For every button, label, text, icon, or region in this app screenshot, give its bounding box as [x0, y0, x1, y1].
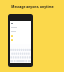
- button[interactable]: Message: [11, 35, 13, 37]
- staticText: Message anyone, anytime: [11, 5, 54, 9]
- button[interactable]: Message: [11, 39, 13, 41]
- button[interactable]: Menu: [10, 21, 31, 25]
- button[interactable]: Keyboard: [10, 44, 31, 63]
